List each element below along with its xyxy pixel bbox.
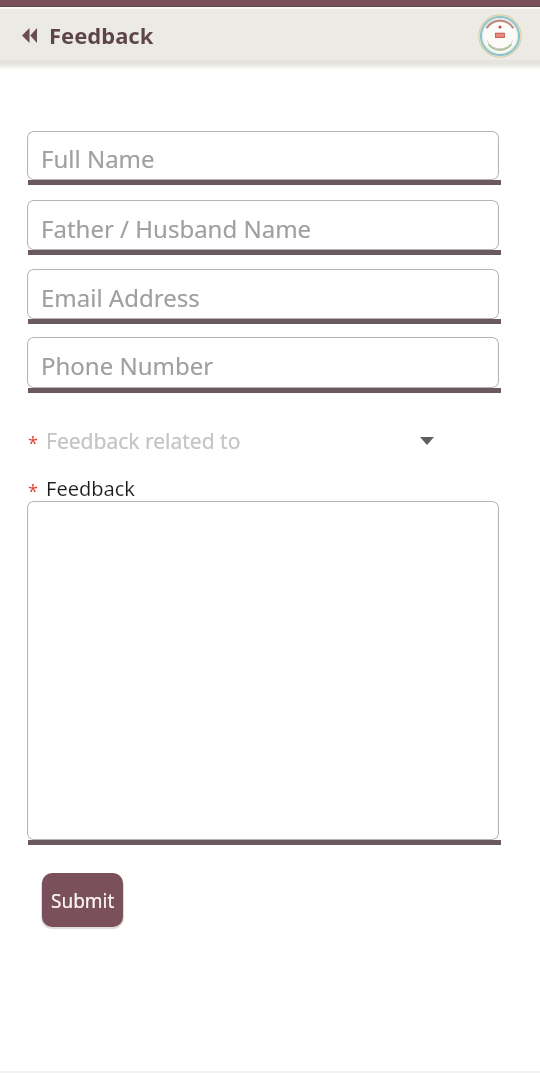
button[interactable]: Phone Number bbox=[27, 337, 499, 388]
staticText: Feedback related to bbox=[46, 427, 241, 456]
button[interactable]: Father / Husband Name bbox=[27, 200, 499, 250]
staticText: Phone Number bbox=[41, 349, 214, 382]
button[interactable]: * bbox=[27, 420, 499, 460]
button[interactable]: Back bbox=[17, 23, 41, 47]
button[interactable]: Email Address bbox=[27, 269, 499, 319]
staticText: * bbox=[28, 479, 38, 503]
button[interactable]: Full Name bbox=[27, 131, 499, 180]
staticText: Feedback bbox=[49, 20, 154, 50]
staticText: Father / Husband Name bbox=[41, 212, 312, 245]
staticText: Submit bbox=[51, 888, 115, 914]
staticText: Email Address bbox=[41, 281, 200, 314]
staticText: * bbox=[28, 431, 38, 456]
button[interactable]: Submit bbox=[42, 873, 123, 927]
staticText: Full Name bbox=[41, 142, 155, 175]
staticText: Feedback bbox=[46, 475, 136, 499]
button[interactable] bbox=[27, 501, 499, 840]
